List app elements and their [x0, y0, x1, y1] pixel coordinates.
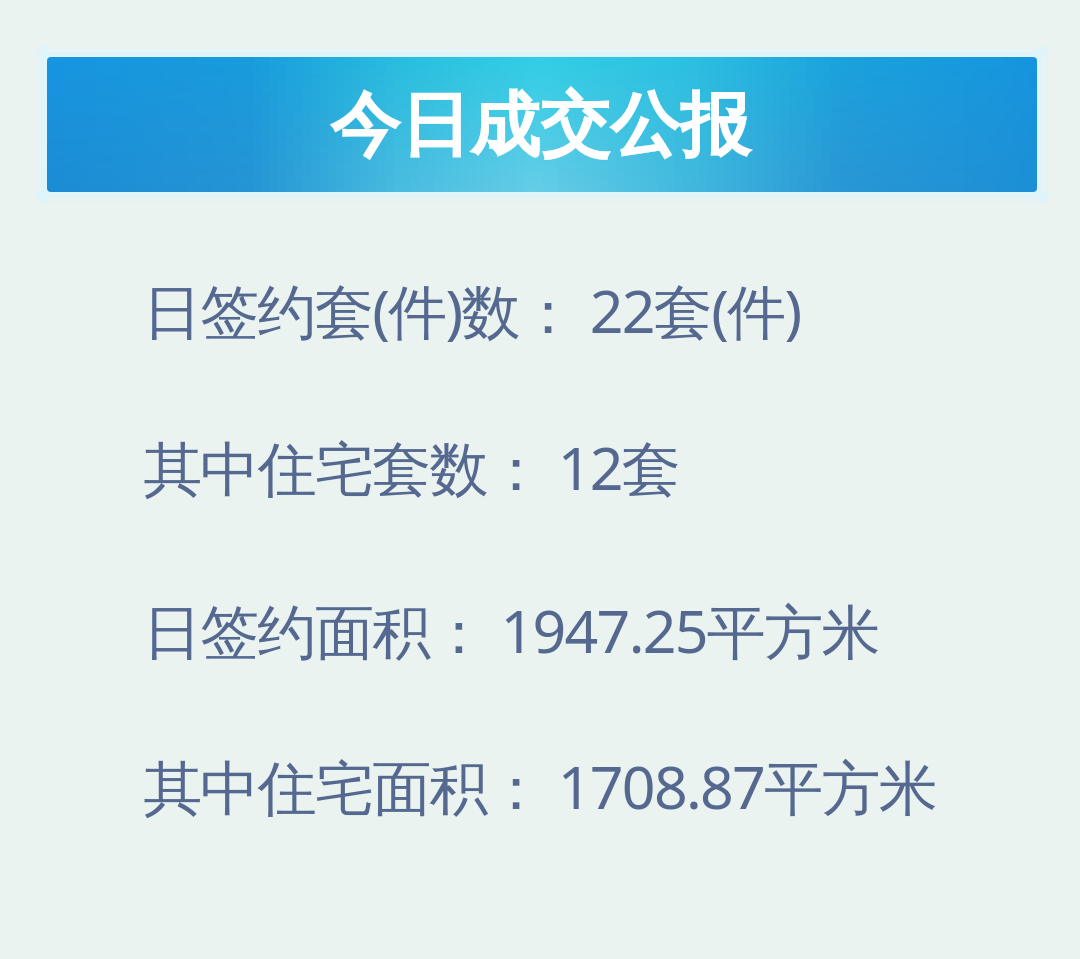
button[interactable]: 日签约套(件)数： 22套(件): [47, 262, 1037, 358]
button[interactable]: 其中住宅套数： 12套: [47, 419, 1037, 515]
staticText: 其中住宅套数： 12套: [143, 427, 680, 508]
staticText: 日签约套(件)数： 22套(件): [143, 270, 801, 351]
button[interactable]: 今日成交公报: [47, 57, 1037, 192]
staticText: 其中住宅面积： 1708.87平方米: [143, 746, 937, 827]
staticText: 今日成交公报: [330, 82, 750, 170]
button[interactable]: 其中住宅面积： 1708.87平方米: [47, 738, 1037, 834]
staticText: 日签约面积： 1947.25平方米: [143, 590, 879, 671]
button[interactable]: 日签约面积： 1947.25平方米: [47, 582, 1037, 678]
